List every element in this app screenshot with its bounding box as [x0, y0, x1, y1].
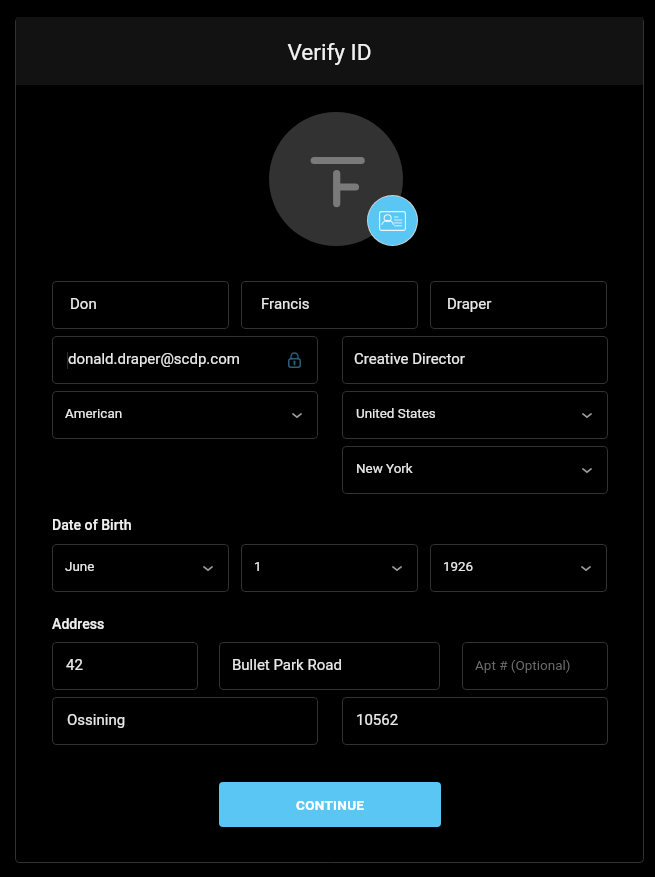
staticText: Bullet Park Road — [232, 656, 342, 674]
button[interactable]: New York — [342, 446, 608, 494]
button[interactable]: Creative Director — [342, 336, 608, 384]
button[interactable]: Ossining — [52, 697, 318, 745]
button[interactable]: Verify identity card — [368, 196, 417, 245]
button[interactable]: CONTINUE — [219, 782, 441, 827]
button[interactable]: Francis — [241, 281, 418, 329]
staticText: 10562 — [356, 711, 399, 729]
button[interactable]: American — [52, 391, 318, 439]
button[interactable]: Verify ID — [16, 17, 643, 85]
staticText: June — [65, 559, 95, 575]
button[interactable]: 10562 — [342, 697, 608, 745]
staticText: New York — [356, 461, 413, 477]
staticText: donald.draper@scdp.com — [68, 350, 240, 368]
button[interactable]: 42 — [52, 642, 198, 690]
button[interactable]: 1926 — [430, 544, 607, 592]
staticText: Address — [52, 616, 105, 633]
staticText: 1 — [254, 559, 262, 575]
button[interactable]: 1 — [241, 544, 418, 592]
staticText: Don — [70, 295, 97, 313]
button[interactable]: Apt # (Optional) — [462, 642, 608, 690]
button[interactable]: Profile photo — [269, 112, 403, 246]
button[interactable]: June — [52, 544, 229, 592]
staticText: Francis — [261, 295, 310, 313]
staticText: Creative Director — [354, 350, 465, 368]
button[interactable]: Draper — [430, 281, 607, 329]
staticText: Ossining — [67, 711, 126, 729]
staticText: 42 — [66, 656, 83, 674]
staticText: CONTINUE — [296, 797, 365, 813]
button[interactable]: Don — [52, 281, 229, 329]
staticText: 1926 — [443, 559, 474, 575]
button[interactable]: United States — [342, 391, 608, 439]
button[interactable]: Bullet Park Road — [219, 642, 440, 690]
staticText: Apt # (Optional) — [475, 657, 571, 673]
staticText: Verify ID — [287, 39, 372, 65]
staticText: Draper — [447, 295, 492, 313]
staticText: United States — [356, 406, 436, 422]
staticText: American — [65, 406, 123, 422]
button[interactable]: donald.draper@scdp.com — [52, 336, 318, 384]
staticText: Date of Birth — [52, 517, 132, 534]
